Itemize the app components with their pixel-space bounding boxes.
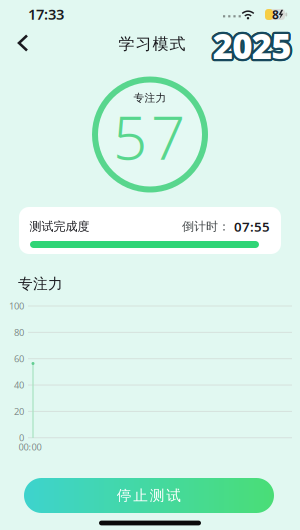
- staticText: 00:00: [18, 441, 41, 453]
- staticText: 17:33: [28, 4, 64, 24]
- staticText: 2025: [211, 22, 289, 68]
- staticText: 2025: [212, 24, 290, 70]
- staticText: 2025: [215, 22, 293, 68]
- staticText: 80: [14, 326, 24, 338]
- staticText: 2025: [213, 22, 291, 68]
- button[interactable]: Back: [8, 28, 38, 58]
- staticText: 专注力: [18, 275, 63, 293]
- staticText: 2025: [211, 21, 290, 67]
- button[interactable]: 停止测试: [24, 478, 274, 513]
- staticText: 2025: [213, 20, 291, 66]
- staticText: 60: [14, 352, 24, 365]
- staticText: 07:55: [234, 218, 270, 235]
- staticText: 2025: [214, 24, 292, 70]
- staticText: 2025: [212, 20, 290, 66]
- staticText: 2025: [211, 23, 289, 69]
- staticText: 2025: [215, 22, 293, 68]
- staticText: 2025: [215, 23, 293, 69]
- staticText: 40: [14, 379, 24, 391]
- staticText: 2025: [213, 25, 291, 71]
- staticText: 0: [19, 431, 24, 444]
- staticText: 2025: [211, 22, 289, 68]
- staticText: 8: [272, 7, 279, 22]
- staticText: 2025: [214, 21, 293, 67]
- staticText: 2025: [214, 20, 292, 66]
- staticText: 停止测试: [117, 486, 181, 504]
- staticText: 57: [113, 97, 185, 176]
- staticText: 测试完成度: [29, 219, 89, 234]
- staticText: 100: [9, 300, 24, 312]
- staticText: 专注力: [133, 91, 166, 104]
- staticText: 20: [14, 405, 24, 417]
- staticText: 2025: [211, 24, 290, 70]
- staticText: 学习模式: [118, 34, 185, 54]
- staticText: 倒计时：: [182, 219, 234, 234]
- staticText: 2025: [214, 24, 293, 70]
